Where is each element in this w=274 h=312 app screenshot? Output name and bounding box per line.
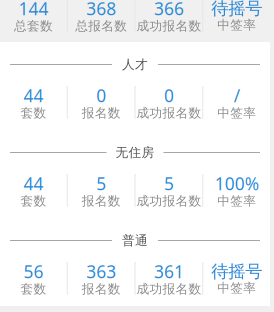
staticText: 普通 [122, 232, 148, 248]
staticText: 44 [23, 172, 43, 195]
staticText: 5 [96, 172, 106, 195]
staticText: 报名数 [82, 105, 121, 121]
staticText: 报名数 [82, 193, 121, 209]
staticText: 5 [164, 172, 174, 195]
staticText: 0 [164, 84, 174, 107]
staticText: 44 [23, 84, 43, 107]
staticText: 366 [154, 0, 184, 20]
staticText: 100% [215, 172, 259, 195]
staticText: 总套数 [14, 18, 53, 34]
staticText: 成功报名数 [136, 105, 201, 121]
staticText: 无住房 [115, 144, 154, 160]
staticText: 56 [23, 260, 43, 283]
staticText: 361 [154, 260, 184, 283]
staticText: 0 [96, 84, 106, 107]
staticText: 待摇号 [211, 261, 262, 282]
staticText: 成功报名数 [136, 18, 201, 34]
staticText: 套数 [20, 193, 46, 209]
staticText: 144 [18, 0, 48, 20]
staticText: / [234, 84, 240, 107]
staticText: 中签率 [217, 105, 256, 121]
staticText: 总报名数 [75, 18, 127, 34]
staticText: 人才 [122, 56, 148, 72]
staticText: 待摇号 [211, 0, 262, 19]
staticText: 中签率 [217, 280, 256, 296]
staticText: 368 [86, 0, 116, 20]
staticText: 套数 [20, 105, 46, 121]
staticText: 中签率 [217, 17, 256, 33]
staticText: 成功报名数 [136, 193, 201, 209]
staticText: 成功报名数 [136, 281, 201, 297]
staticText: 363 [86, 260, 116, 283]
staticText: 报名数 [82, 281, 121, 297]
staticText: 套数 [20, 281, 46, 297]
staticText: 中签率 [217, 193, 256, 209]
